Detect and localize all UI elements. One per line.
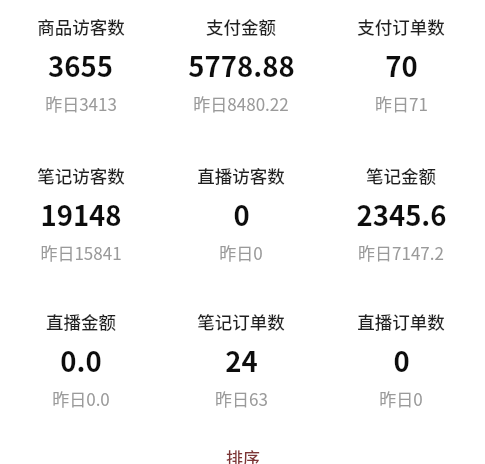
button[interactable]: 直播订单数 <box>321 309 481 411</box>
staticText: 昨日0 <box>219 240 263 265</box>
staticText: 直播订单数 <box>357 309 445 334</box>
staticText: 昨日7147.2 <box>358 240 444 265</box>
staticText: 笔记访客数 <box>37 163 125 188</box>
staticText: 3655 <box>48 45 113 85</box>
staticText: 直播金额 <box>46 309 116 334</box>
staticText: 昨日3413 <box>45 91 117 116</box>
button[interactable]: 直播金额 <box>0 309 161 411</box>
staticText: 0 <box>393 340 410 380</box>
button[interactable]: 直播访客数 <box>161 163 321 265</box>
staticText: 昨日8480.22 <box>193 91 289 116</box>
button[interactable]: 排序 <box>226 445 260 464</box>
staticText: 昨日15841 <box>40 240 122 265</box>
staticText: 0.0 <box>60 340 102 380</box>
button[interactable]: 商品访客数 <box>0 14 161 116</box>
staticText: 5778.88 <box>188 45 295 85</box>
staticText: 商品访客数 <box>37 14 125 39</box>
staticText: 昨日71 <box>375 91 428 116</box>
button[interactable]: 支付金额 <box>161 14 321 116</box>
staticText: 笔记金额 <box>366 163 436 188</box>
staticText: 支付订单数 <box>357 14 445 39</box>
staticText: 昨日0.0 <box>52 386 110 411</box>
staticText: 2345.6 <box>356 194 447 234</box>
staticText: 70 <box>385 45 418 85</box>
staticText: 0 <box>233 194 250 234</box>
button[interactable]: 笔记订单数 <box>161 309 321 411</box>
staticText: 支付金额 <box>206 14 276 39</box>
staticText: 笔记订单数 <box>197 309 285 334</box>
staticText: 19148 <box>40 194 122 234</box>
button[interactable]: 支付订单数 <box>321 14 481 116</box>
staticText: 昨日0 <box>379 386 423 411</box>
button[interactable]: 笔记访客数 <box>0 163 161 265</box>
staticText: 直播访客数 <box>197 163 285 188</box>
staticText: 24 <box>225 340 258 380</box>
staticText: 昨日63 <box>215 386 268 411</box>
button[interactable]: 笔记金额 <box>321 163 481 265</box>
